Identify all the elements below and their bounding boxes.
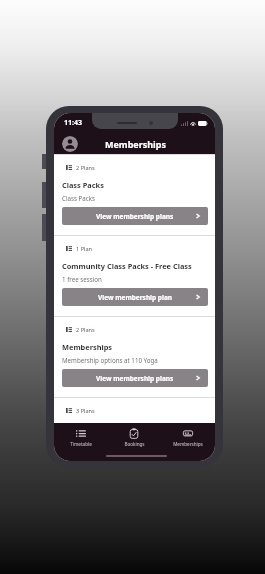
button[interactable]: View membership plans [62, 207, 208, 225]
staticText: Bookings [124, 441, 145, 447]
staticText: 2 Plans [76, 326, 95, 334]
staticText: Memberships [173, 441, 203, 447]
staticText: Membership options at 110 Yoga [62, 356, 158, 364]
staticText: Timetable [70, 441, 92, 447]
staticText: 2 Plans [76, 164, 95, 172]
button[interactable]: Account [62, 136, 78, 152]
button[interactable]: View membership plan [62, 288, 208, 306]
staticText: Memberships [62, 342, 113, 352]
staticText: 11:43 [64, 118, 82, 128]
button[interactable]: View membership plans [62, 369, 208, 387]
staticText: View membership plans [96, 374, 174, 383]
button[interactable]: Timetable [54, 423, 107, 461]
button[interactable]: Bookings [107, 423, 161, 461]
staticText: Class Packs [62, 180, 104, 190]
staticText: View membership plan [98, 293, 173, 302]
staticText: Community Class Packs - Free Class [62, 261, 192, 271]
staticText: 3 Plans [76, 407, 95, 415]
staticText: Memberships [105, 138, 166, 150]
staticText: Class Packs [62, 194, 95, 202]
staticText: 1 Plan [76, 245, 93, 253]
button[interactable]: Memberships [161, 423, 215, 461]
staticText: 1 free session [62, 275, 102, 283]
staticText: View membership plans [96, 212, 174, 221]
